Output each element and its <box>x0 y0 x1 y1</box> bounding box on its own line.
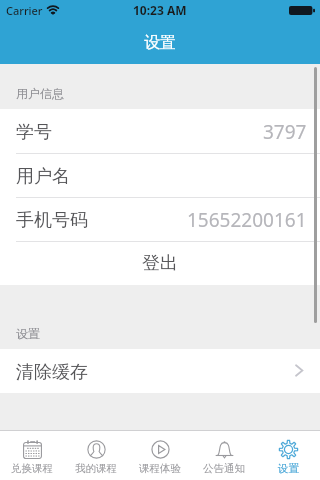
staticText: 设置 <box>144 33 176 53</box>
staticText: 10:23 AM <box>133 2 187 18</box>
button[interactable]: 手机号码 <box>0 197 320 241</box>
staticText: 用户名 <box>16 165 70 188</box>
staticText: 兑换课程 <box>11 462 53 475</box>
staticText: 用户信息 <box>16 86 64 101</box>
button[interactable]: 登出 <box>0 241 320 285</box>
staticText: Carrier <box>6 3 43 18</box>
staticText: 3797 <box>263 119 307 145</box>
staticText: 设置 <box>278 462 299 475</box>
staticText: 登出 <box>142 252 178 275</box>
staticText: 清除缓存 <box>16 361 88 384</box>
staticText: 我的课程 <box>75 462 117 475</box>
staticText: 公告通知 <box>203 462 245 475</box>
button[interactable]: 清除缓存 <box>0 349 320 393</box>
staticText: 手机号码 <box>16 209 88 232</box>
button[interactable]: 学号 <box>0 109 320 153</box>
button[interactable]: 兑换课程 <box>0 431 64 480</box>
button[interactable]: 用户名 <box>0 153 320 197</box>
staticText: 15652200161 <box>187 207 307 233</box>
button[interactable]: 公告通知 <box>192 431 256 480</box>
button[interactable]: 设置 <box>256 431 320 480</box>
staticText: 学号 <box>16 121 52 144</box>
staticText: 课程体验 <box>139 462 181 475</box>
staticText: 设置 <box>16 326 40 341</box>
button[interactable]: 课程体验 <box>128 431 192 480</box>
button[interactable]: 我的课程 <box>64 431 128 480</box>
